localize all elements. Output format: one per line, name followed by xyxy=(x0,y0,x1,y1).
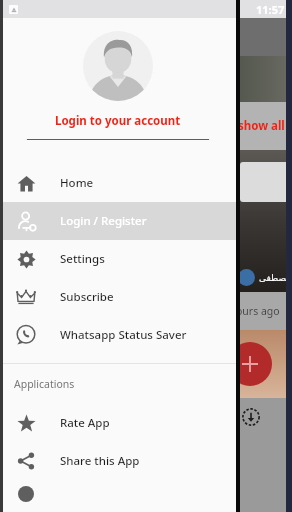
staticText: Login / Register xyxy=(60,213,147,229)
button[interactable]: Home xyxy=(0,164,236,202)
button[interactable]: Whatsapp Status Saver xyxy=(0,316,236,354)
button[interactable]: Settings xyxy=(0,240,236,278)
staticText: show all xyxy=(238,118,285,134)
button[interactable]: Rate App xyxy=(0,404,236,442)
button[interactable]: Login to your account xyxy=(0,113,236,129)
staticText: ours ago xyxy=(236,304,280,318)
button[interactable]: Share this App xyxy=(0,442,236,480)
staticText: Subscribe xyxy=(60,289,114,305)
staticText: Home xyxy=(60,175,94,191)
staticText: 11:57 xyxy=(256,2,285,17)
staticText: Whatsapp Status Saver xyxy=(60,327,187,343)
button[interactable]: show all xyxy=(0,102,292,150)
button[interactable]: Subscribe xyxy=(0,278,236,316)
button[interactable]: Add xyxy=(228,342,272,386)
staticText: Login to your account xyxy=(55,113,181,129)
button[interactable]: Download xyxy=(240,406,262,428)
button[interactable]: Login / Register xyxy=(0,202,236,240)
button[interactable] xyxy=(0,480,236,512)
staticText: مصطفى xyxy=(259,273,292,283)
staticText: Rate App xyxy=(60,415,110,431)
staticText: Share this App xyxy=(60,453,140,469)
staticText: Settings xyxy=(60,251,105,267)
staticText: Applications xyxy=(14,377,75,391)
